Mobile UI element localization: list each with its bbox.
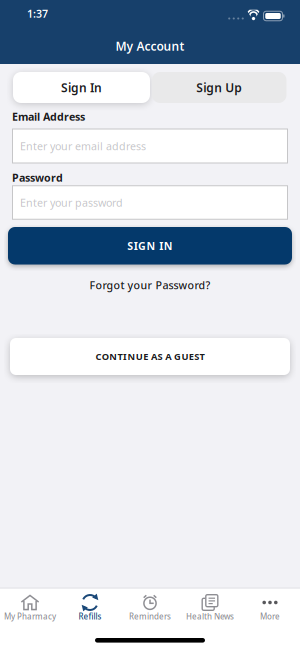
staticText: My Account bbox=[115, 38, 184, 54]
button[interactable]: CONTINUE AS A GUEST bbox=[10, 338, 290, 375]
button[interactable]: More bbox=[240, 586, 300, 630]
button[interactable]: SIGN IN bbox=[8, 227, 292, 264]
button[interactable]: Refills bbox=[60, 586, 120, 630]
staticText: Health News bbox=[186, 611, 234, 622]
staticText: Enter your password bbox=[20, 195, 123, 210]
staticText: My Pharmacy bbox=[4, 611, 56, 622]
staticText: Sign In bbox=[61, 79, 102, 95]
staticText: Sign Up bbox=[196, 79, 242, 95]
button[interactable]: Sign Up bbox=[152, 72, 286, 103]
button[interactable]: Forgot your Password? bbox=[89, 278, 210, 292]
button[interactable]: My Pharmacy bbox=[0, 586, 60, 630]
staticText: More bbox=[260, 611, 280, 622]
staticText: Password bbox=[12, 170, 63, 185]
button[interactable]: Reminders bbox=[120, 586, 180, 630]
staticText: Enter your email address bbox=[20, 139, 146, 153]
button[interactable]: Health News bbox=[180, 586, 240, 630]
button[interactable]: Sign In bbox=[13, 72, 150, 103]
staticText: CONTINUE AS A GUEST bbox=[95, 350, 205, 363]
staticText: Email Address bbox=[12, 109, 85, 124]
staticText: SIGN IN bbox=[127, 239, 173, 253]
staticText: 1:37 bbox=[27, 6, 48, 21]
staticText: Reminders bbox=[129, 611, 171, 622]
staticText: Refills bbox=[78, 611, 101, 622]
staticText: Forgot your Password? bbox=[89, 278, 210, 292]
